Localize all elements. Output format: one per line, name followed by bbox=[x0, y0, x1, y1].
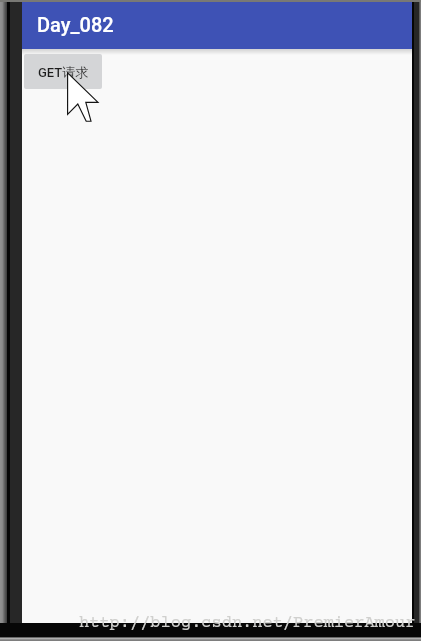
button[interactable]: Day_082 bbox=[22, 2, 412, 49]
button[interactable]: GET请求 bbox=[24, 54, 102, 89]
staticText: GET请求 bbox=[38, 64, 89, 80]
staticText: http://blog.csdn.net/PremierAmour bbox=[79, 614, 416, 633]
other: Mouse pointer bbox=[67, 72, 100, 123]
staticText: Day_082 bbox=[37, 13, 114, 36]
